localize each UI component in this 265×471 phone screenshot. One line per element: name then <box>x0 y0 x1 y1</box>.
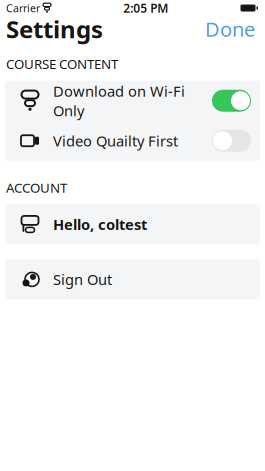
staticText: Video Quailty First <box>53 131 178 150</box>
button[interactable]: Done <box>200 13 260 45</box>
staticText: ACCOUNT <box>6 179 67 196</box>
button[interactable]: Video Quailty First <box>5 121 260 161</box>
staticText: Sign Out <box>53 270 112 289</box>
button[interactable]: Hello, coltest <box>5 204 260 244</box>
staticText: Done <box>205 16 255 42</box>
staticText: Hello, coltest <box>53 215 147 234</box>
staticText: Settings <box>6 13 103 45</box>
button[interactable]: Sign Out <box>5 259 260 299</box>
staticText: Download on Wi-Fi Only <box>53 81 185 120</box>
staticText: 2:05 PM <box>123 0 168 16</box>
staticText: Carrier <box>6 1 40 15</box>
button[interactable]: Download on Wi-Fi Only <box>5 81 260 121</box>
staticText: COURSE CONTENT <box>6 55 118 73</box>
